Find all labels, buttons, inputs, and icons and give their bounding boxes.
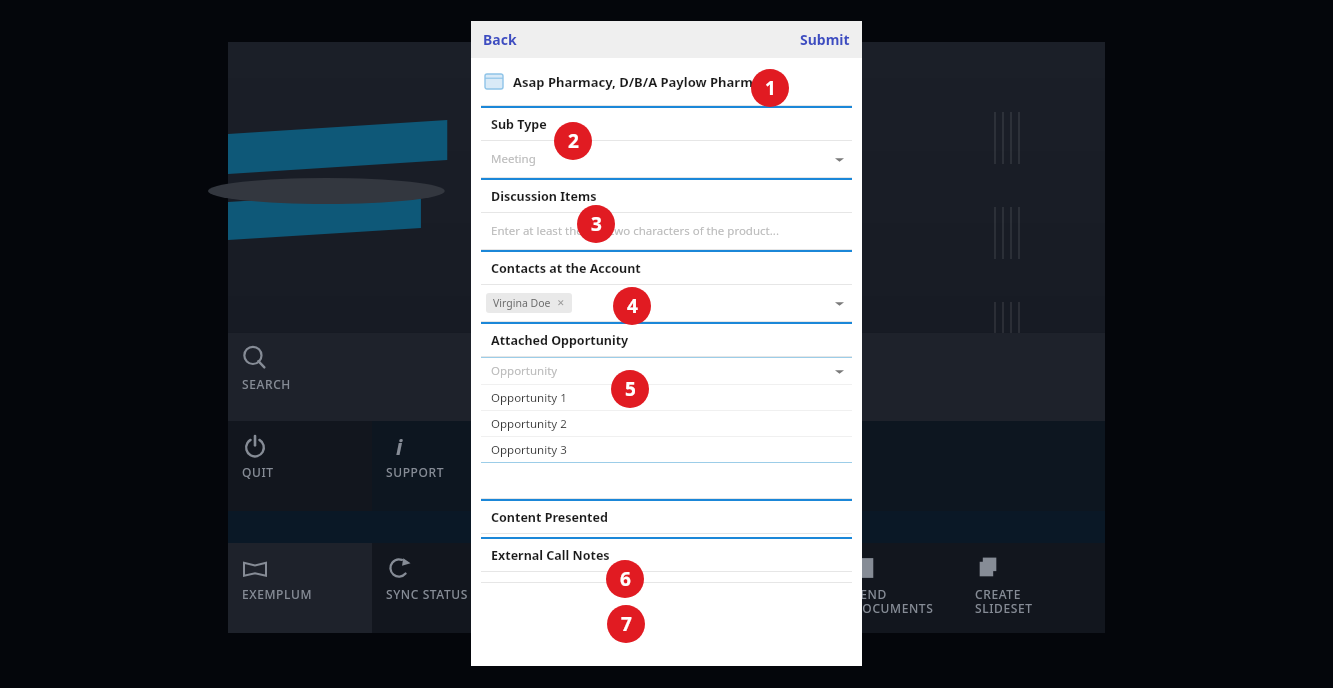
button[interactable]: Opportunity 3 xyxy=(481,437,852,462)
staticText: Discussion Items xyxy=(491,188,597,205)
staticText: Back xyxy=(483,30,517,49)
staticText: Attached Opportunity xyxy=(491,332,629,349)
staticText: ✕ xyxy=(557,298,565,308)
staticText: Enter at least the first two characters … xyxy=(491,223,779,239)
button[interactable]: Submit xyxy=(788,24,862,55)
button[interactable]: Virgina Doe xyxy=(481,285,852,322)
button[interactable]: Asap Pharmacy, D/B/A Paylow Pharmacy xyxy=(471,58,862,105)
button[interactable]: SEARCH xyxy=(228,333,440,421)
button[interactable]: QUIT xyxy=(228,421,372,511)
staticText: Opportunity 2 xyxy=(491,416,567,432)
button[interactable]: Opportunity 2 xyxy=(481,411,852,436)
staticText: SEND DOCUMENTS xyxy=(853,586,934,617)
staticText: 1 xyxy=(765,75,776,101)
staticText: SUPPORT xyxy=(386,464,445,480)
staticText: Opportunity xyxy=(491,363,558,379)
staticText: Asap Pharmacy, D/B/A Paylow Pharmacy xyxy=(513,73,775,91)
staticText: 2 xyxy=(568,128,579,154)
button[interactable]: Opportunity 1 xyxy=(481,385,852,410)
staticText: Sub Type xyxy=(491,116,547,133)
button[interactable]: Back xyxy=(471,24,529,55)
staticText: 6 xyxy=(620,566,631,592)
button[interactable]: Contacts at the Account xyxy=(481,250,852,285)
staticText: SYNC STATUS xyxy=(386,586,468,602)
staticText: QUIT xyxy=(242,464,274,480)
button[interactable]: SEND DOCUMENTS xyxy=(839,543,961,633)
button[interactable]: External Call Notes xyxy=(481,537,852,572)
staticText: SEARCH xyxy=(242,376,291,392)
staticText: Virgina Doe xyxy=(493,296,551,310)
button[interactable]: Meeting xyxy=(481,141,852,178)
staticText: EXEMPLUM xyxy=(242,586,312,602)
button[interactable]: EXEMPLUM xyxy=(228,543,372,633)
button[interactable]: Discussion Items xyxy=(481,178,852,213)
button[interactable]: Opportunity xyxy=(481,358,852,384)
staticText: Meeting xyxy=(491,151,536,167)
button[interactable]: Enter at least the first two characters … xyxy=(481,213,852,250)
staticText: i xyxy=(396,433,403,459)
staticText: 3 xyxy=(591,211,602,237)
button[interactable]: Sub Type xyxy=(481,106,852,141)
staticText: 5 xyxy=(625,376,636,402)
button[interactable]: Content Presented xyxy=(481,499,852,534)
staticText: 7 xyxy=(621,611,632,637)
button[interactable]: SYNC STATUS xyxy=(372,543,517,633)
staticText: 4 xyxy=(627,293,638,319)
staticText: CREATE SLIDESET xyxy=(975,586,1033,617)
staticText: External Call Notes xyxy=(491,547,610,564)
button[interactable]: CREATE SLIDESET xyxy=(961,543,1105,633)
staticText: Content Presented xyxy=(491,509,608,526)
staticText: Submit xyxy=(800,30,850,49)
button[interactable]: i xyxy=(372,421,517,511)
button[interactable]: Attached Opportunity xyxy=(481,322,852,357)
staticText: Contacts at the Account xyxy=(491,260,641,277)
staticText: Opportunity 3 xyxy=(491,442,567,458)
staticText: Opportunity 1 xyxy=(491,390,567,406)
